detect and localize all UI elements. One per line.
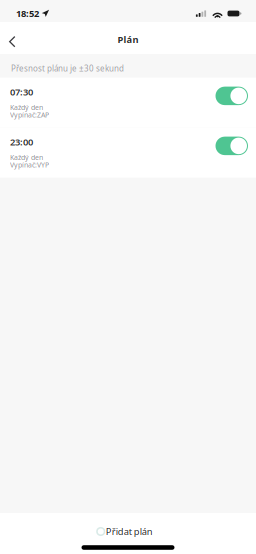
staticText: Každý den <box>10 153 43 162</box>
staticText: Vypínač:ZAP <box>10 110 49 119</box>
staticText: Přesnost plánu je ±30 sekund <box>11 63 124 74</box>
staticText: 07:30 <box>10 86 33 98</box>
button[interactable]: Back <box>0 22 28 54</box>
staticText: 23:00 <box>10 136 33 148</box>
staticText: Každý den <box>10 103 43 112</box>
button[interactable]: Přidat plán <box>0 513 256 554</box>
button[interactable]: 07:30 <box>0 78 256 128</box>
button[interactable]: 23:00 <box>0 128 256 178</box>
staticText: Přidat plán <box>106 525 153 538</box>
staticText: 18:52 <box>16 7 39 20</box>
staticText: Vypínač:VYP <box>10 160 49 169</box>
staticText: Plán <box>117 33 138 46</box>
